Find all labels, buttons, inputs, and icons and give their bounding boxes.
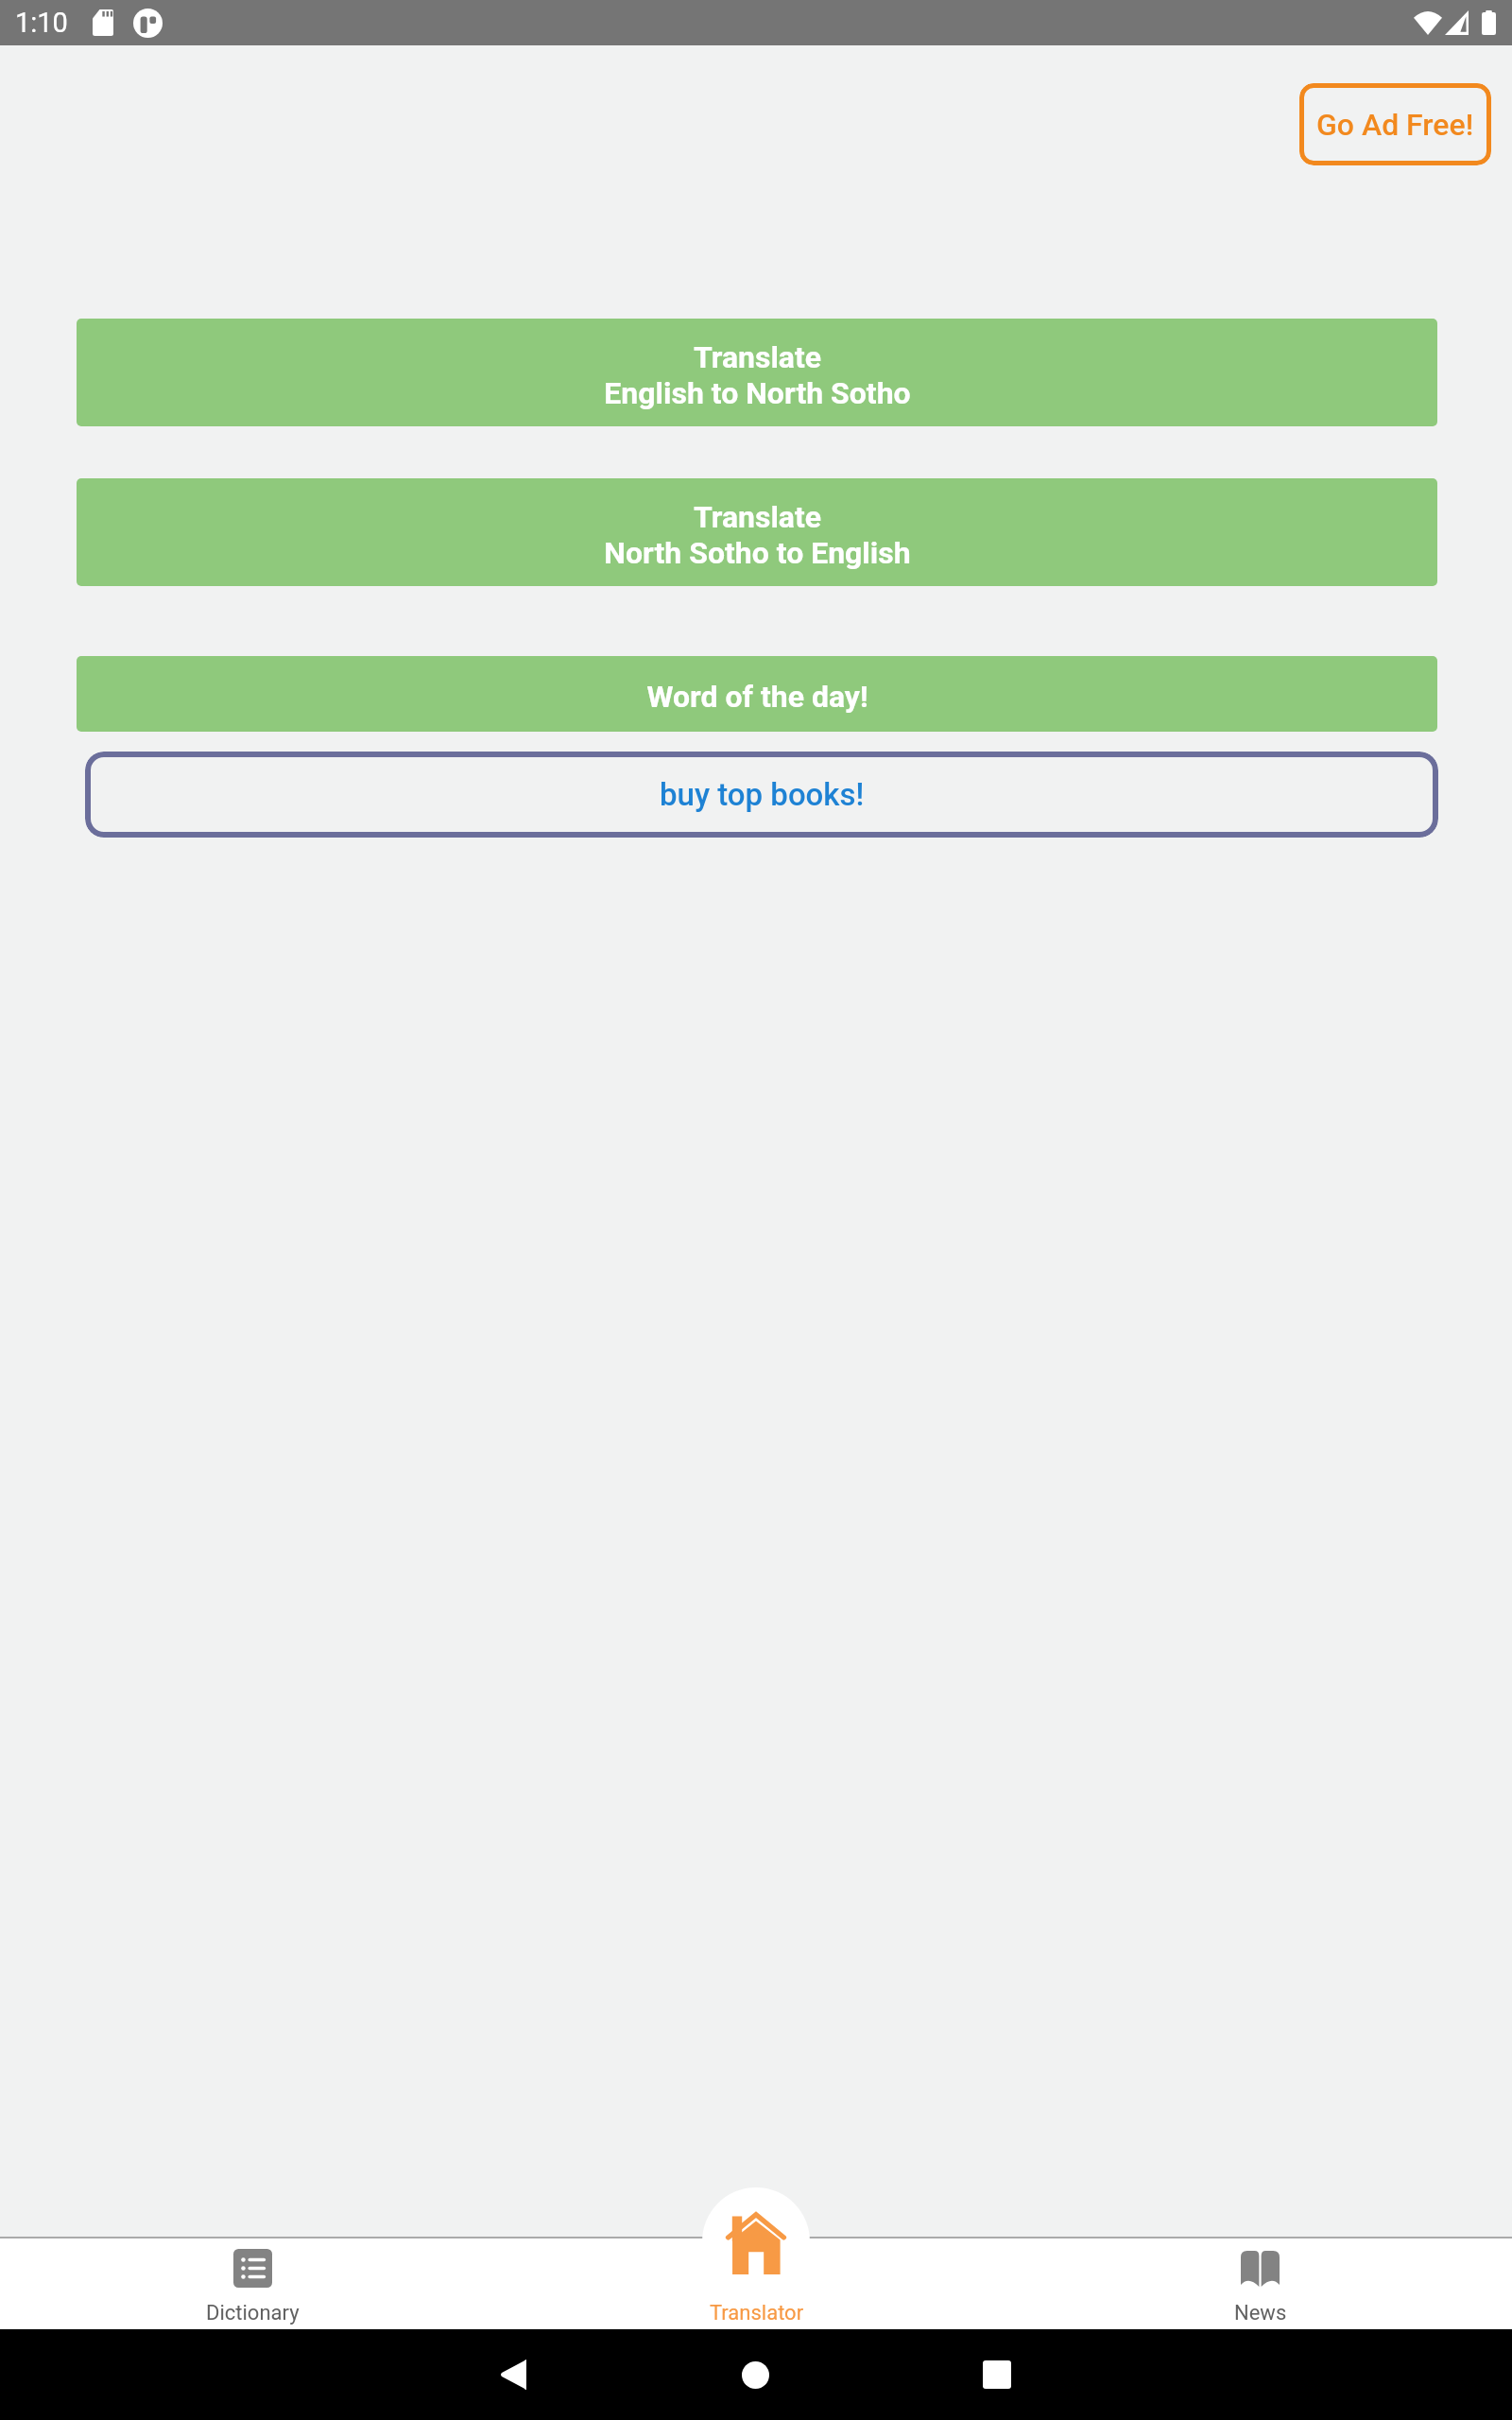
staticText: Translate English to North Sotho (604, 339, 911, 411)
button[interactable]: buy top books! (85, 752, 1438, 838)
button[interactable]: Recents (971, 2348, 1023, 2401)
staticText: Dictionary (206, 2301, 300, 2325)
button[interactable]: Go Ad Free! (1299, 83, 1491, 165)
staticText: 1:10 (15, 7, 68, 39)
button[interactable]: Translator (702, 2187, 810, 2295)
staticText: Go Ad Free! (1316, 107, 1474, 143)
button[interactable]: Dictionary (0, 2238, 505, 2329)
staticText: News (1234, 2301, 1287, 2325)
staticText: Translate North Sotho to English (604, 499, 911, 571)
button[interactable]: Translate English to North Sotho (77, 319, 1437, 426)
button[interactable]: Translate North Sotho to English (77, 478, 1437, 586)
staticText: buy top books! (660, 776, 865, 813)
button[interactable]: Translator (505, 2238, 1008, 2329)
button[interactable]: Home (729, 2348, 782, 2401)
button[interactable]: Back (487, 2348, 540, 2401)
staticText: Word of the day! (646, 679, 868, 715)
button[interactable]: News (1008, 2238, 1512, 2329)
button[interactable]: Word of the day! (77, 656, 1437, 732)
staticText: Translator (710, 2301, 804, 2325)
